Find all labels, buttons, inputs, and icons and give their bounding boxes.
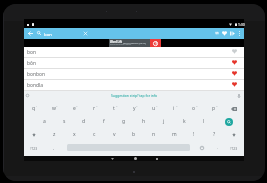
button[interactable]: p	[204, 102, 224, 115]
button[interactable]: Shift	[24, 128, 44, 141]
staticText: ,	[53, 145, 55, 151]
staticText: r	[93, 105, 96, 112]
button[interactable]: Search	[214, 115, 244, 128]
staticText: y	[133, 105, 136, 112]
button[interactable]: Favorite	[230, 80, 238, 88]
button[interactable]: !	[184, 128, 204, 141]
button[interactable]: ?123	[224, 141, 244, 154]
staticText: bon	[44, 31, 52, 37]
button[interactable]: x	[64, 128, 84, 141]
button[interactable]: Backspace	[224, 102, 244, 115]
staticText: !	[193, 131, 195, 138]
staticText: 4	[96, 104, 98, 107]
button[interactable]: Clear search	[81, 29, 90, 38]
staticText: x	[73, 131, 76, 138]
staticText: 3	[76, 104, 78, 107]
button[interactable]: Emoji	[192, 141, 212, 154]
staticText: 1:30	[238, 22, 245, 27]
staticText: a	[43, 118, 46, 125]
button[interactable]: q	[24, 102, 44, 115]
staticText: 5	[116, 104, 118, 107]
staticText: 9	[196, 104, 198, 107]
staticText: l	[203, 118, 205, 125]
staticText: bôn	[27, 60, 36, 67]
staticText: w	[52, 105, 56, 112]
button[interactable]: g	[114, 115, 134, 128]
staticText: d	[82, 118, 86, 125]
staticText: i	[173, 105, 175, 112]
button[interactable]: Shift	[224, 128, 244, 141]
button[interactable]: v	[104, 128, 124, 141]
button[interactable]: More options	[235, 29, 243, 37]
button[interactable]: c	[84, 128, 104, 141]
button[interactable]: Word Lift	[109, 39, 150, 47]
button[interactable]: bonbon	[24, 69, 244, 79]
button[interactable]: bondla	[24, 80, 244, 90]
button[interactable]: w	[44, 102, 64, 115]
button[interactable]: Favorite	[230, 47, 238, 55]
button[interactable]: Back	[108, 156, 116, 161]
button[interactable]: Recents	[153, 156, 161, 161]
button[interactable]: Swap languages	[213, 29, 221, 37]
button[interactable]: j	[154, 115, 174, 128]
button[interactable]: i	[164, 102, 184, 115]
staticText: 7	[156, 104, 158, 107]
button[interactable]: Voice input	[236, 93, 242, 99]
button[interactable]: a	[34, 115, 54, 128]
staticText: o	[192, 105, 196, 112]
button[interactable]: f	[94, 115, 114, 128]
button[interactable]: z	[44, 128, 64, 141]
button[interactable]: e	[64, 102, 84, 115]
staticText: 2	[56, 104, 58, 107]
button[interactable]: Suggestion strip? tap for info	[111, 93, 158, 98]
button[interactable]: Settings	[25, 93, 30, 98]
button[interactable]: b	[124, 128, 144, 141]
staticText: z	[53, 131, 56, 138]
button[interactable]: ?123	[24, 141, 44, 154]
button[interactable]: Back	[26, 29, 35, 38]
button[interactable]: bon	[44, 31, 52, 37]
button[interactable]: r	[84, 102, 104, 115]
button[interactable]: Open word lift	[150, 39, 161, 47]
staticText: m	[172, 131, 177, 138]
button[interactable]: y	[124, 102, 144, 115]
staticText: 8	[176, 104, 178, 107]
button[interactable]: d	[74, 115, 94, 128]
button[interactable]: h	[134, 115, 154, 128]
button[interactable]: bôn	[24, 58, 244, 68]
staticText: 1	[36, 104, 38, 107]
button[interactable]: bon	[24, 47, 244, 57]
button[interactable]: n	[144, 128, 164, 141]
staticText: word lift from clipbd.	[110, 43, 132, 46]
staticText: tap to display (Alt+X)	[123, 41, 146, 44]
button[interactable]: Home	[131, 156, 139, 161]
staticText: v	[113, 131, 116, 138]
staticText: u	[152, 105, 156, 112]
staticText: h	[142, 118, 146, 125]
button[interactable]: Favorites	[220, 29, 228, 37]
staticText: bondla	[27, 82, 44, 89]
button[interactable]: s	[54, 115, 74, 128]
staticText: g	[122, 118, 126, 125]
button[interactable]: Dictionary	[228, 29, 236, 37]
staticText: s	[63, 118, 66, 125]
button[interactable]: m	[164, 128, 184, 141]
button[interactable]: u	[144, 102, 164, 115]
staticText: ?	[213, 131, 216, 138]
staticText: bonbon	[27, 71, 45, 78]
button[interactable]: o	[184, 102, 204, 115]
button[interactable]: Favorite	[230, 69, 238, 77]
button[interactable]: l	[194, 115, 214, 128]
staticText: .	[217, 145, 219, 151]
button[interactable]: k	[174, 115, 194, 128]
staticText: f	[103, 118, 105, 125]
staticText: 0	[216, 104, 218, 107]
staticText: c	[93, 131, 96, 138]
button[interactable]: ?	[204, 128, 224, 141]
button[interactable]: t	[104, 102, 124, 115]
staticText: 6	[136, 104, 138, 107]
button[interactable]: Favorite	[230, 58, 238, 66]
